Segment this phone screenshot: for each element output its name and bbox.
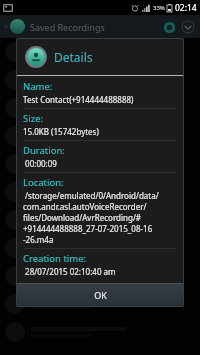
button[interactable]: More options (180, 19, 196, 35)
staticText: 15.0KB (15742bytes) (23, 126, 99, 137)
staticText: Saved Recordings (30, 21, 105, 33)
staticText: 02:14 (175, 2, 197, 14)
staticText: OK (94, 289, 107, 301)
staticText: 28/07/2015 02:10:40 am (23, 266, 116, 277)
staticText: Details (54, 49, 93, 65)
staticText: Duration: (23, 144, 65, 157)
staticText: < (4, 22, 9, 32)
staticText: /storage/emulated/0/Android/data/ com.an… (23, 190, 159, 245)
staticText: 00:00:09 (23, 158, 57, 169)
staticText: Saved Recordings (30, 21, 105, 33)
staticText: Name: (23, 80, 53, 93)
staticText: 02:14 (175, 2, 197, 14)
staticText: Location: (23, 176, 64, 189)
button[interactable]: OK (17, 284, 183, 306)
staticText: Test Contact(+914444488888) (23, 94, 134, 105)
staticText: Size: (23, 112, 44, 125)
button[interactable]: Refresh (161, 19, 177, 35)
staticText: < (4, 22, 9, 32)
staticText: Creation time: (23, 252, 87, 265)
button[interactable]: Refresh (161, 19, 177, 35)
staticText: 33% (153, 4, 165, 12)
button[interactable]: More options (180, 19, 196, 35)
staticText: 33% (153, 4, 165, 12)
